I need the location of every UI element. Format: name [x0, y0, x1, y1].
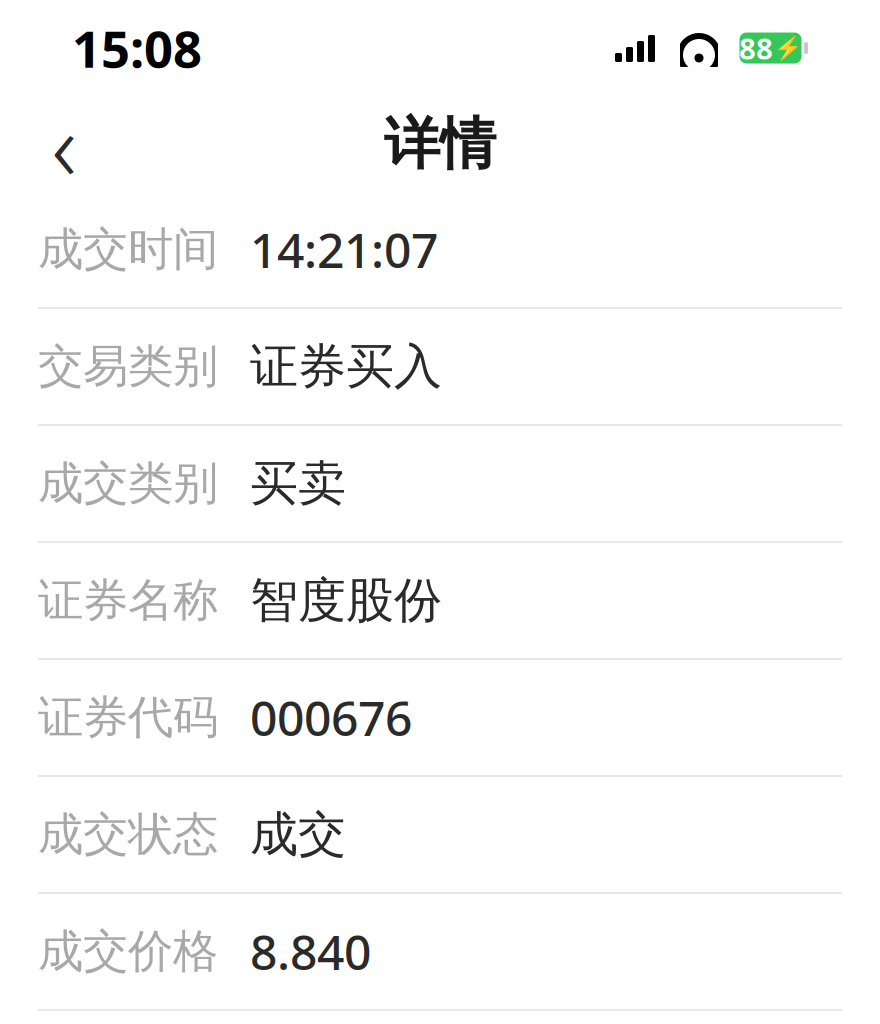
staticText: 交易类别 — [38, 339, 218, 394]
staticText: 成交时间 — [38, 222, 218, 277]
staticText: ‹ — [51, 80, 76, 208]
staticText: 14:21:07 — [250, 218, 438, 281]
button[interactable]: Back — [24, 104, 104, 184]
staticText: 成交 — [250, 805, 346, 864]
staticText: 88 — [739, 28, 773, 67]
staticText: 证券代码 — [38, 690, 218, 745]
staticText: 证券买入 — [250, 337, 442, 396]
staticText: 智度股份 — [250, 571, 442, 630]
staticText: 成交价格 — [38, 924, 218, 979]
staticText: 买卖 — [250, 454, 346, 513]
staticText: ⚡ — [774, 35, 802, 61]
staticText: 8.840 — [250, 920, 371, 983]
staticText: 15:08 — [72, 14, 202, 82]
staticText: 成交类别 — [38, 456, 218, 511]
staticText: 成交状态 — [38, 807, 218, 862]
staticText: 000676 — [250, 686, 412, 749]
staticText: 证券名称 — [38, 573, 218, 628]
staticText: 详情 — [384, 110, 496, 178]
